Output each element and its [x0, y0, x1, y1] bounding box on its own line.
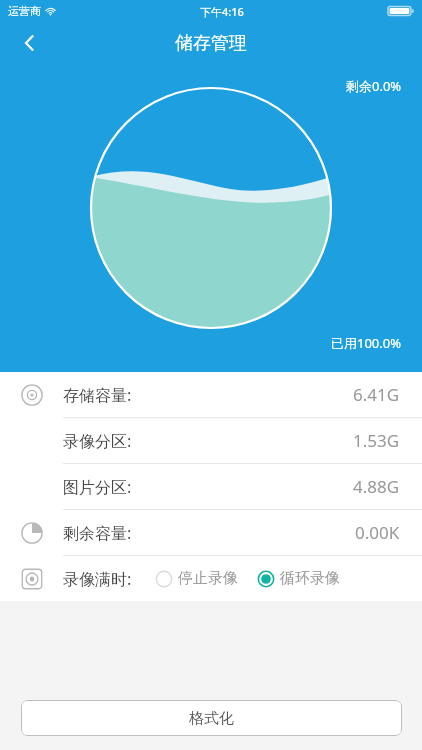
button[interactable]: Back: [10, 23, 50, 63]
staticText: 格式化: [189, 709, 234, 728]
staticText: 已用100.0%: [331, 334, 402, 352]
staticText: 下午4:16: [200, 4, 244, 19]
staticText: 存储容量:: [63, 384, 132, 406]
staticText: 6.41G: [353, 383, 400, 406]
button[interactable]: 格式化: [21, 700, 402, 736]
button[interactable]: 停止录像: [156, 569, 238, 588]
button[interactable]: 录像分区:: [0, 418, 422, 463]
staticText: 剩余容量:: [63, 522, 132, 544]
staticText: 图片分区:: [63, 476, 132, 498]
staticText: 停止录像: [178, 569, 238, 588]
staticText: 录像分区:: [63, 430, 132, 452]
staticText: 1.53G: [353, 429, 400, 452]
button[interactable]: 图片分区:: [0, 464, 422, 509]
button[interactable]: 循环录像: [258, 569, 340, 588]
button[interactable]: 剩余容量:: [0, 510, 422, 555]
staticText: 运营商: [8, 4, 41, 18]
staticText: 剩余0.0%: [346, 77, 402, 95]
staticText: 4.88G: [353, 475, 400, 498]
staticText: 0.00K: [355, 521, 400, 544]
staticText: 储存管理: [175, 32, 247, 55]
staticText: 循环录像: [280, 569, 340, 588]
staticText: 录像满时:: [63, 568, 132, 590]
button[interactable]: 存储容量:: [0, 372, 422, 417]
